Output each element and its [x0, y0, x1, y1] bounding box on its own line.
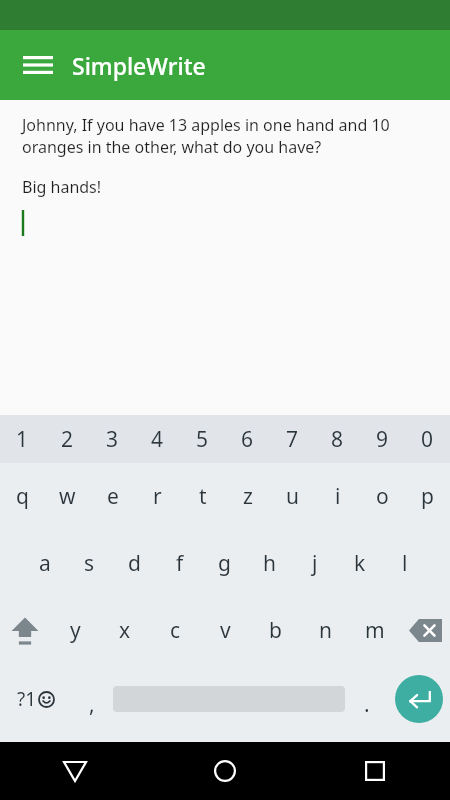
staticText: 1	[16, 425, 29, 454]
staticText: h	[263, 549, 276, 578]
staticText: c	[170, 616, 181, 645]
staticText: z	[243, 482, 253, 511]
button[interactable]: ?1	[0, 664, 71, 734]
button[interactable]: y	[50, 597, 100, 664]
staticText: n	[319, 616, 332, 645]
button[interactable]: 9	[360, 415, 405, 463]
staticText: 7	[286, 425, 299, 454]
button[interactable]: c	[150, 597, 200, 664]
button[interactable]: q	[0, 463, 45, 530]
button[interactable]: i	[315, 463, 360, 530]
button[interactable]: 3	[90, 415, 135, 463]
button[interactable]: Open navigation menu	[12, 39, 64, 91]
staticText: b	[269, 616, 282, 645]
staticText: k	[354, 549, 366, 578]
button[interactable]: .	[346, 664, 387, 734]
staticText: w	[59, 482, 76, 511]
button[interactable]: v	[200, 597, 250, 664]
button[interactable]: n	[300, 597, 350, 664]
staticText: o	[376, 482, 389, 511]
staticText: y	[70, 616, 81, 645]
staticText: l	[402, 549, 408, 578]
staticText: a	[39, 549, 51, 578]
staticText: e	[107, 482, 119, 511]
button[interactable]: 8	[315, 415, 360, 463]
button[interactable]: f	[157, 530, 202, 597]
staticText: d	[128, 549, 141, 578]
button[interactable]: Home	[150, 742, 300, 800]
button[interactable]: 0	[405, 415, 450, 463]
staticText: p	[421, 482, 434, 511]
staticText: SimpleWrite	[72, 50, 206, 81]
button[interactable]: z	[225, 463, 270, 530]
staticText: 4	[151, 425, 164, 454]
button[interactable]: 1	[0, 415, 45, 463]
button[interactable]: g	[202, 530, 247, 597]
button[interactable]: u	[270, 463, 315, 530]
button[interactable]: e	[90, 463, 135, 530]
staticText: x	[119, 616, 131, 645]
button[interactable]: 5	[180, 415, 225, 463]
button[interactable]: 4	[135, 415, 180, 463]
staticText: q	[16, 482, 29, 511]
button[interactable]: r	[135, 463, 180, 530]
button[interactable]: t	[180, 463, 225, 530]
button[interactable]: 7	[270, 415, 315, 463]
button[interactable]: Back	[0, 742, 150, 800]
staticText: f	[176, 549, 184, 578]
staticText: s	[84, 549, 95, 578]
button[interactable]: o	[360, 463, 405, 530]
staticText: g	[218, 549, 231, 578]
staticText: ,	[89, 690, 95, 719]
button[interactable]: p	[405, 463, 450, 530]
button[interactable]: Shift	[0, 597, 50, 664]
button[interactable]: k	[337, 530, 382, 597]
staticText: v	[220, 616, 231, 645]
staticText: Johnny, If you have 13 apples in one han…	[22, 114, 428, 158]
staticText: 8	[331, 425, 344, 454]
button[interactable]: x	[100, 597, 150, 664]
staticText: 2	[61, 425, 74, 454]
button[interactable]: Recent apps	[300, 742, 450, 800]
button[interactable]: w	[45, 463, 90, 530]
staticText: 9	[376, 425, 389, 454]
button[interactable]: Backspace	[400, 597, 450, 664]
button[interactable]: Space	[112, 664, 346, 734]
button[interactable]: a	[22, 530, 67, 597]
staticText: 3	[106, 425, 119, 454]
staticText: 5	[196, 425, 209, 454]
staticText: ?1	[17, 686, 37, 712]
staticText: .	[364, 690, 370, 719]
button[interactable]: d	[112, 530, 157, 597]
staticText: 6	[241, 425, 254, 454]
staticText: r	[153, 482, 162, 511]
button[interactable]: s	[67, 530, 112, 597]
button[interactable]: ,	[71, 664, 112, 734]
button[interactable]: 6	[225, 415, 270, 463]
staticText: j	[312, 549, 318, 578]
button[interactable]: m	[350, 597, 400, 664]
button[interactable]: b	[250, 597, 300, 664]
button[interactable]: l	[382, 530, 427, 597]
staticText: Big hands!	[22, 176, 102, 198]
button[interactable]: 2	[45, 415, 90, 463]
button[interactable]: j	[292, 530, 337, 597]
button[interactable]: Enter	[387, 664, 450, 734]
staticText: u	[286, 482, 299, 511]
staticText: i	[335, 482, 341, 511]
staticText: t	[199, 482, 207, 511]
staticText: 0	[421, 425, 434, 454]
staticText: m	[365, 616, 385, 645]
button[interactable]: h	[247, 530, 292, 597]
